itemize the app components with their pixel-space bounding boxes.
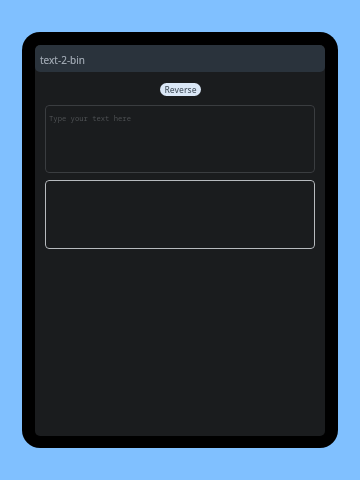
button[interactable]: Type your text here (45, 105, 315, 173)
staticText: Type your text here (49, 113, 131, 123)
staticText: Reverse (160, 84, 201, 96)
staticText: text-2-bin (40, 53, 86, 67)
button[interactable]: Reverse (160, 83, 201, 96)
button[interactable]: Converted output (45, 180, 315, 249)
